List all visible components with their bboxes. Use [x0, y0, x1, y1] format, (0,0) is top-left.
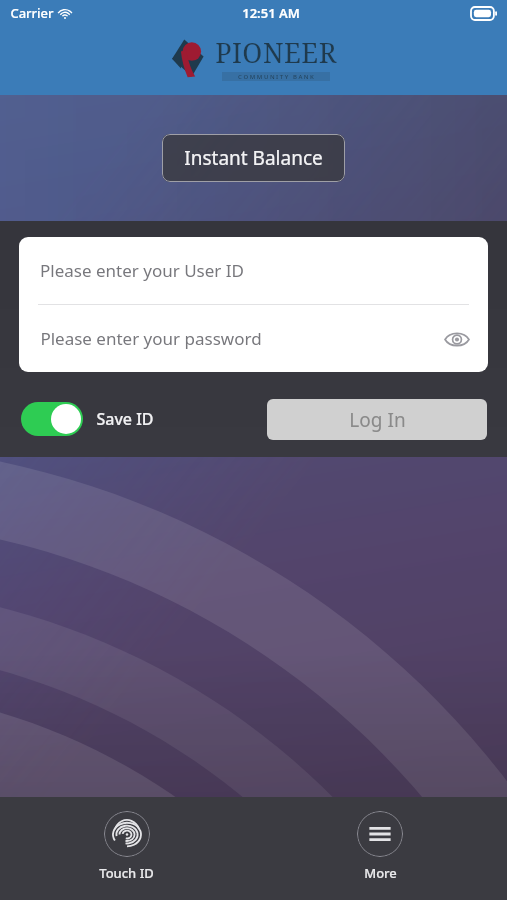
staticText: Please enter your password: [40, 327, 262, 350]
staticText: 12:51 AM: [242, 4, 300, 22]
staticText: Log In: [349, 407, 406, 433]
button[interactable]: Save ID toggle, on: [21, 402, 83, 436]
button[interactable]: Show password: [440, 322, 474, 356]
button[interactable]: More: [339, 797, 421, 888]
button[interactable]: Please enter your User ID: [19, 237, 488, 304]
staticText: PIONEER: [215, 34, 337, 71]
staticText: Carrier: [10, 4, 54, 22]
staticText: Touch ID: [99, 864, 154, 882]
staticText: Please enter your User ID: [40, 259, 244, 282]
button[interactable]: Touch ID: [81, 797, 172, 888]
button[interactable]: Log In: [267, 399, 487, 440]
staticText: Instant Balance: [184, 145, 323, 171]
button[interactable]: Instant Balance: [162, 134, 345, 182]
staticText: Save ID: [96, 408, 154, 430]
staticText: More: [364, 864, 397, 882]
staticText: C O M M U N I T Y B A N K: [238, 73, 314, 81]
button[interactable]: Please enter your password: [19, 305, 488, 372]
